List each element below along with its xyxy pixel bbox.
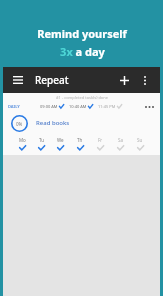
staticText: Tu [39,137,45,143]
button[interactable]: Open navigation menu [10,72,26,88]
staticText: DAILY [8,104,20,109]
staticText: Su [137,137,143,143]
button[interactable]: Read books [36,119,70,127]
button[interactable]: Tu [32,134,51,153]
button[interactable]: Sa [110,134,130,153]
button[interactable]: More options [137,72,153,88]
staticText: We [57,137,64,143]
staticText: 09:00 AM [40,104,58,109]
button[interactable]: Add reminder [115,71,133,89]
staticText: 10:40 AM [69,104,87,109]
button[interactable]: 11:45 PM [98,104,122,109]
staticText: Th [77,137,83,143]
button[interactable]: Fr [90,134,110,153]
staticText: Remind yourself [37,26,127,41]
button[interactable]: 10:40 AM [69,104,93,109]
button[interactable]: 09:00 AM [40,104,64,109]
button[interactable]: Task options [143,102,155,112]
button[interactable]: Su [130,134,150,153]
staticText: 11:45 PM [98,104,116,109]
staticText: 0% [16,121,23,127]
staticText: Fr [98,137,103,143]
button[interactable]: Repeat [35,73,69,87]
button[interactable]: Th [70,134,90,153]
staticText: 3x a day [60,44,105,59]
staticText: Mo [19,137,26,143]
staticText: #1 - completed task(s) done [56,95,108,100]
staticText: Sa [118,137,123,143]
button[interactable]: We [51,134,70,153]
button[interactable]: Mo [13,134,32,153]
